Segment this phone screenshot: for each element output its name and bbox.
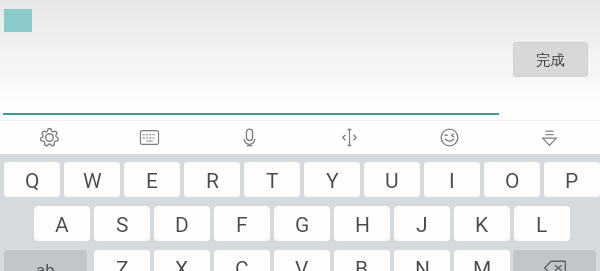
- staticText: F: [236, 213, 248, 238]
- staticText: N: [415, 257, 430, 271]
- button[interactable]: N: [394, 250, 450, 271]
- button[interactable]: X: [154, 250, 210, 271]
- button[interactable]: A: [34, 206, 90, 241]
- button[interactable]: S: [94, 206, 150, 241]
- button[interactable]: G: [274, 206, 330, 241]
- button[interactable]: Emoji: [424, 121, 474, 154]
- staticText: ab: [36, 260, 55, 271]
- button[interactable]: C: [214, 250, 270, 271]
- button[interactable]: E: [124, 162, 180, 197]
- button[interactable]: F: [214, 206, 270, 241]
- staticText: G: [295, 213, 310, 238]
- button[interactable]: L: [514, 206, 570, 241]
- button[interactable]: B: [334, 250, 390, 271]
- button[interactable]: V: [274, 250, 330, 271]
- staticText: A: [55, 213, 69, 238]
- staticText: L: [536, 213, 548, 238]
- staticText: M: [473, 257, 492, 271]
- button[interactable]: Y: [304, 162, 360, 197]
- staticText: I: [449, 169, 455, 194]
- staticText: Y: [326, 169, 339, 194]
- button[interactable]: Keyboard: [124, 121, 174, 154]
- staticText: W: [83, 169, 102, 194]
- button[interactable]: D: [154, 206, 210, 241]
- button[interactable]: Backspace: [513, 250, 596, 271]
- button[interactable]: 完成: [514, 43, 587, 76]
- button[interactable]: Move cursor: [324, 121, 374, 154]
- staticText: R: [206, 169, 219, 194]
- button[interactable]: O: [484, 162, 540, 197]
- staticText: Z: [116, 257, 129, 271]
- button[interactable]: Voice input: [224, 121, 274, 154]
- button[interactable]: U: [364, 162, 420, 197]
- staticText: C: [235, 257, 249, 271]
- staticText: K: [475, 213, 489, 238]
- button[interactable]: W: [64, 162, 120, 197]
- button[interactable]: Settings: [24, 121, 74, 154]
- staticText: U: [385, 169, 399, 194]
- button[interactable]: H: [334, 206, 390, 241]
- button[interactable]: M: [454, 250, 510, 271]
- staticText: X: [175, 257, 189, 271]
- staticText: 完成: [536, 51, 565, 69]
- button[interactable]: Hide keyboard: [524, 121, 574, 154]
- button[interactable]: I: [424, 162, 480, 197]
- button[interactable]: ab: [4, 250, 87, 271]
- staticText: S: [116, 213, 129, 238]
- staticText: T: [266, 169, 279, 194]
- button[interactable]: R: [184, 162, 240, 197]
- staticText: H: [355, 213, 370, 238]
- staticText: P: [565, 169, 579, 194]
- button[interactable]: K: [454, 206, 510, 241]
- button[interactable]: P: [544, 162, 600, 197]
- staticText: D: [175, 213, 189, 238]
- button[interactable]: Q: [4, 162, 60, 197]
- button[interactable]: Z: [94, 250, 150, 271]
- button[interactable]: J: [394, 206, 450, 241]
- staticText: B: [355, 257, 369, 271]
- staticText: V: [295, 257, 309, 271]
- staticText: Q: [25, 169, 40, 194]
- staticText: E: [146, 169, 158, 194]
- staticText: O: [505, 169, 520, 194]
- button[interactable]: T: [244, 162, 300, 197]
- staticText: J: [416, 213, 428, 238]
